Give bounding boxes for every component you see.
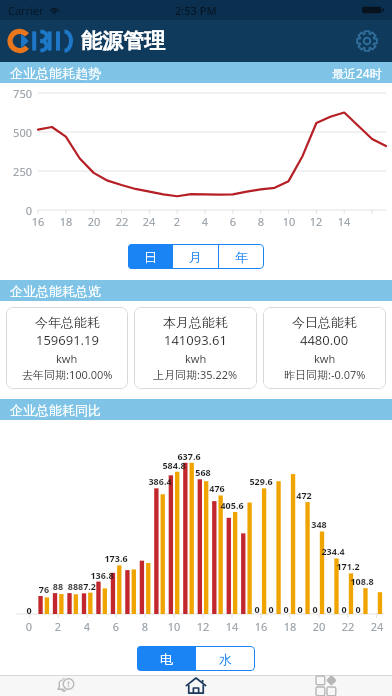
staticText: 405.6 [215,499,249,511]
button[interactable]: 月 [173,244,218,269]
staticText: 108.8 [345,575,379,587]
staticText: 88 [41,580,75,592]
staticText: 20 [85,214,103,229]
staticText: 最近24时 [332,65,382,81]
staticText: 0 [310,603,320,615]
staticText: 234.4 [316,545,350,557]
staticText: 18 [281,619,299,634]
staticText: 10 [280,214,298,229]
staticText: kwh [185,351,207,366]
staticText: 去年同期:100.00% [22,367,113,382]
staticText: 本月总能耗 [163,314,228,330]
button[interactable]: 年 [219,244,264,269]
staticText: 14 [223,619,241,634]
staticText: 2 [168,214,186,229]
staticText: 0 [20,619,38,634]
staticText: 136.8 [85,569,119,581]
staticText: kwh [56,351,78,366]
staticText: 173.6 [99,552,133,564]
staticText: 0 [353,603,363,615]
staticText: 6 [107,619,125,634]
staticText: 87.2 [70,580,104,592]
staticText: 今日总能耗 [292,314,357,330]
staticText: 0 [324,603,334,615]
staticText: 476 [200,482,234,494]
button[interactable]: 今年总能耗 [6,307,128,389]
staticText: 386.4 [143,475,177,487]
staticText: 年 [235,249,248,265]
staticText: 24 [140,214,158,229]
staticText: kwh [314,351,336,366]
staticText: 22 [339,619,357,634]
staticText: 529.6 [244,475,278,487]
staticText: 上月同期:35.22% [153,367,238,382]
staticText: 472 [287,489,321,501]
staticText: 0 [281,603,291,615]
staticText: 0 [295,603,305,615]
staticText: 0 [0,203,32,218]
button[interactable]: 功能 [261,676,392,696]
staticText: 12 [307,214,325,229]
staticText: 8 [252,214,270,229]
staticText: 20 [310,619,328,634]
staticText: 10 [165,619,183,634]
staticText: 企业总能耗总览 [10,283,101,299]
staticText: 584.8 [157,459,191,471]
staticText: 12 [194,619,212,634]
staticText: 250 [0,164,32,179]
button[interactable]: 日 [128,244,172,269]
staticText: 日 [144,249,157,265]
staticText: 企业总能耗趋势 [10,65,101,81]
staticText: 16 [252,619,270,634]
staticText: 159691.19 [36,331,99,349]
button[interactable]: 本月总能耗 [134,307,257,389]
button[interactable]: 首页 [130,676,261,696]
staticText: 4480.00 [300,331,349,349]
staticText: 348 [302,518,336,530]
staticText: 电 [160,651,173,667]
staticText: 18 [57,214,75,229]
button[interactable]: Settings [352,26,382,56]
staticText: 16 [29,214,47,229]
staticText: 6 [224,214,242,229]
staticText: 昨日同期:-0.07% [284,367,366,382]
staticText: 8 [136,619,154,634]
staticText: 水 [219,651,232,667]
staticText: 0 [252,603,262,615]
staticText: 能源管理 [81,28,165,54]
staticText: 0 [266,603,276,615]
staticText: 4 [78,619,96,634]
staticText: 141093.61 [164,331,227,349]
staticText: 568 [186,466,220,478]
staticText: 2:53 PM [175,3,217,18]
staticText: 500 [0,125,32,140]
staticText: 月 [189,249,202,265]
button[interactable]: 今日总能耗 [263,307,386,389]
button[interactable]: 报警 [0,676,130,696]
staticText: 171.2 [331,560,365,572]
staticText: 4 [196,214,214,229]
staticText: 2 [49,619,67,634]
staticText: 企业总能耗同比 [10,402,101,418]
staticText: 24 [368,619,386,634]
staticText: Carrier [8,3,44,18]
staticText: 0 [12,604,46,616]
staticText: 今年总能耗 [35,314,100,330]
staticText: 88 [56,580,90,592]
staticText: 14 [335,214,353,229]
staticText: 750 [0,86,32,101]
staticText: 76 [27,583,61,595]
staticText: 0 [339,603,349,615]
staticText: 22 [113,214,131,229]
staticText: 637.6 [172,450,206,462]
button[interactable]: 电 [137,646,195,671]
button[interactable]: 水 [196,646,255,671]
